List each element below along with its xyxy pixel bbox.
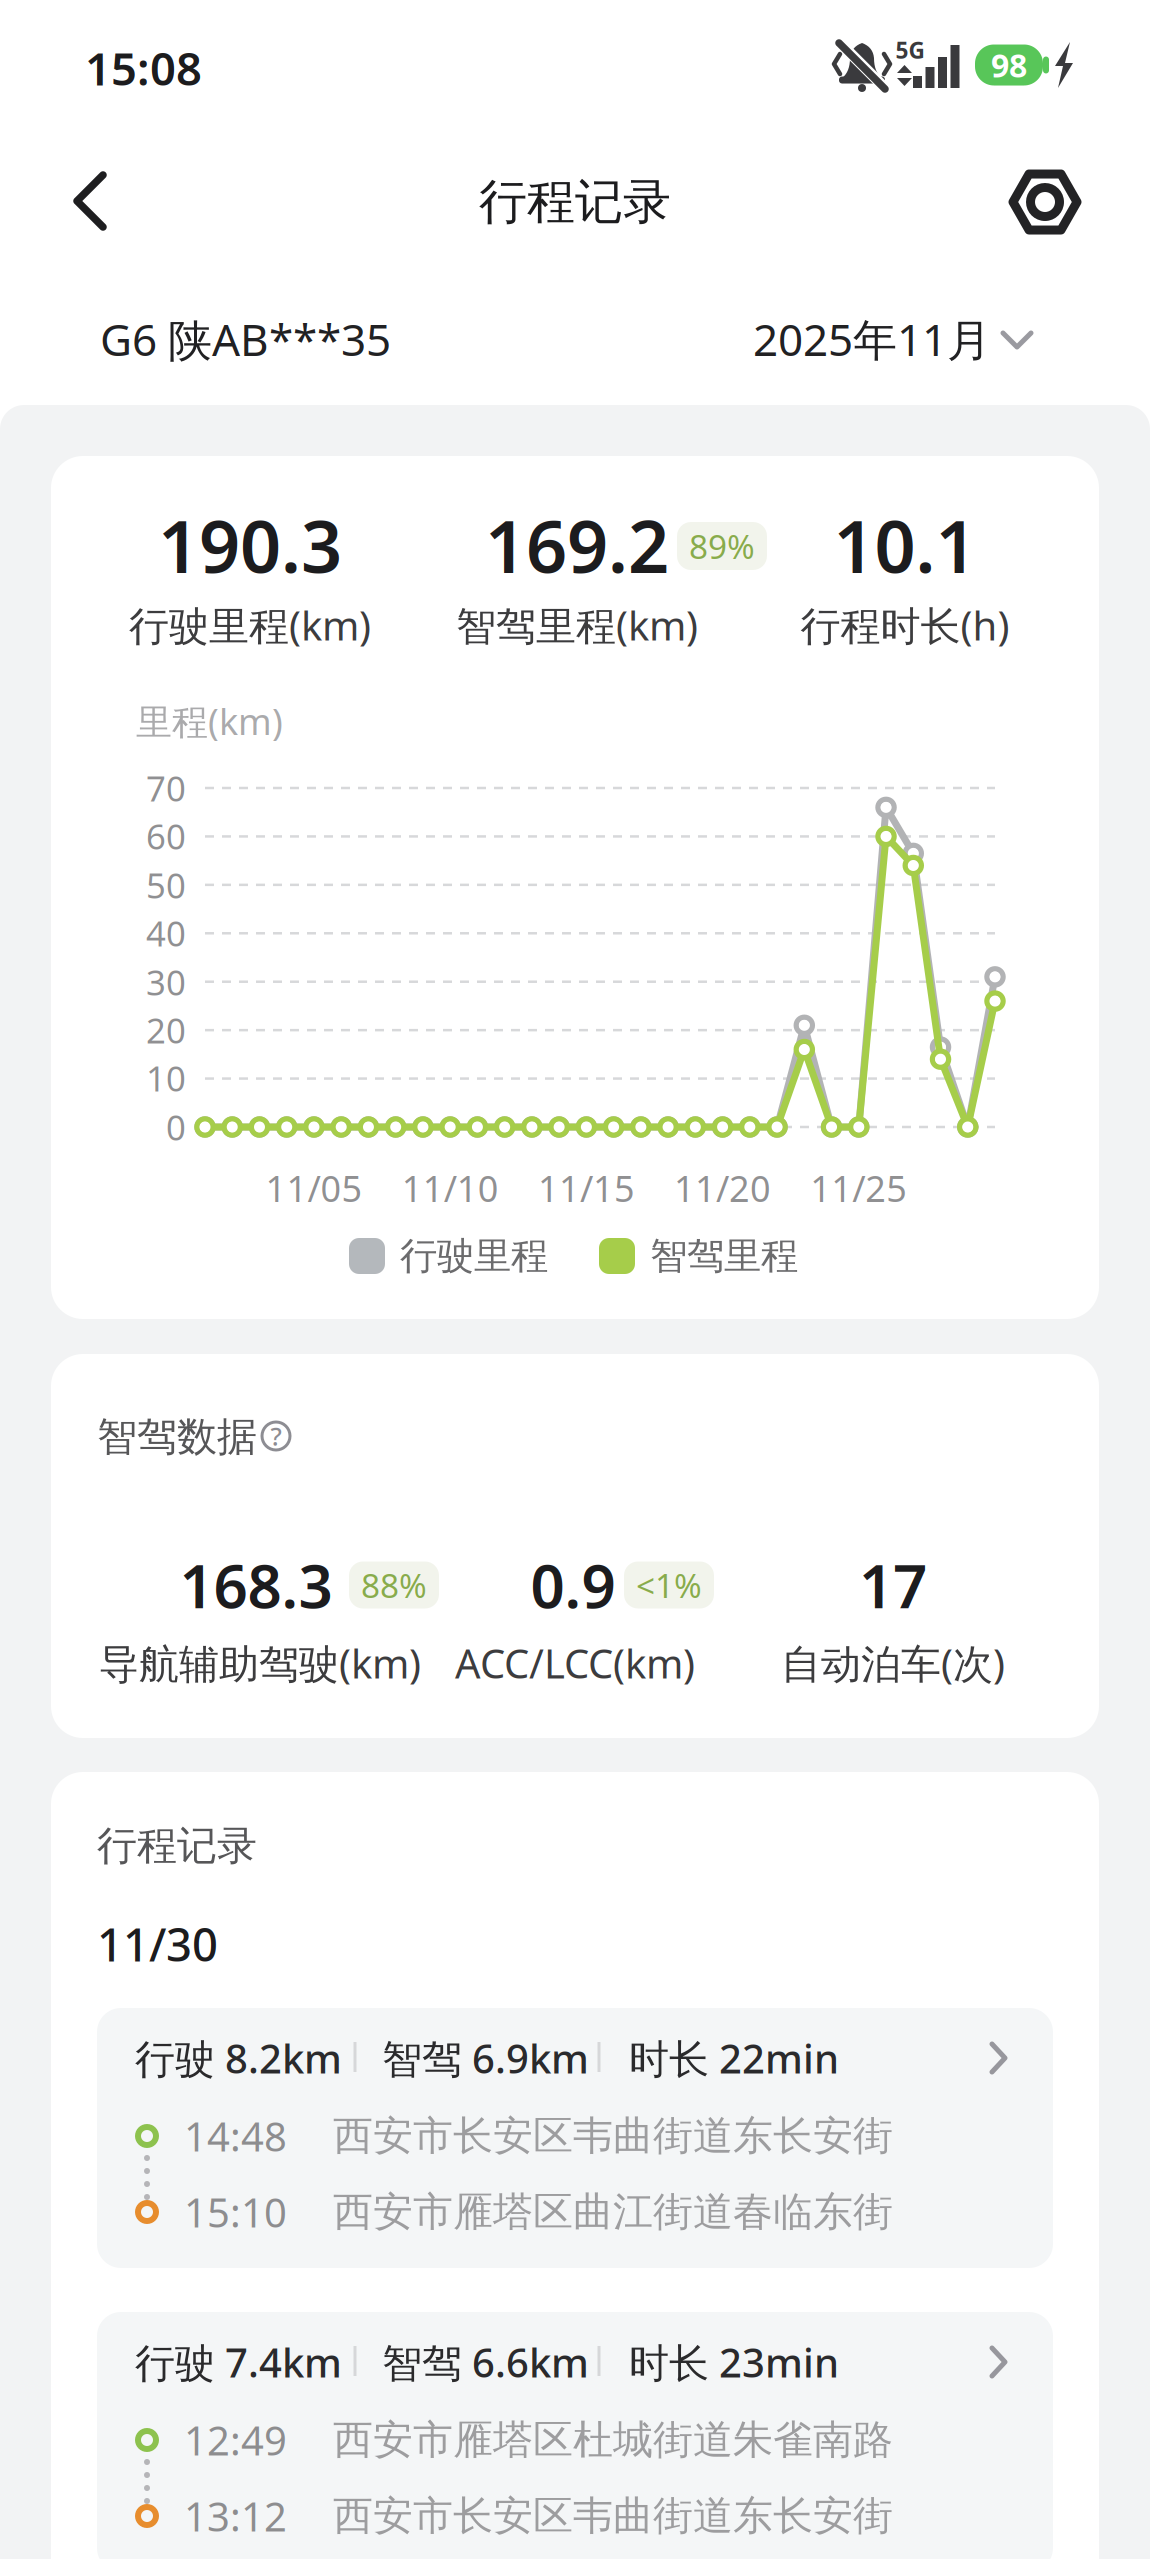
staticText: 50 bbox=[146, 862, 186, 908]
staticText: 169.2 bbox=[485, 497, 669, 593]
staticText: 5G bbox=[895, 35, 924, 65]
staticText: 10 bbox=[146, 1055, 186, 1101]
button[interactable] bbox=[65, 166, 135, 236]
staticText: 导航辅助驾驶(km) bbox=[99, 1636, 421, 1689]
staticText: 11/10 bbox=[402, 1164, 499, 1212]
staticText: 11/15 bbox=[538, 1164, 635, 1212]
staticText: 西安市长安区韦曲街道东长安街 bbox=[333, 2491, 893, 2540]
staticText: 智驾 6.9km bbox=[382, 2031, 589, 2084]
staticText: 11/25 bbox=[810, 1164, 907, 1212]
button[interactable]: 行驶 8.2km bbox=[97, 2008, 1053, 2268]
staticText: 0 bbox=[166, 1104, 186, 1150]
button[interactable]: ? bbox=[259, 1419, 293, 1453]
staticText: 14:48 bbox=[184, 2109, 287, 2162]
staticText: 98 bbox=[991, 44, 1027, 86]
staticText: 行程记录 bbox=[97, 1821, 257, 1870]
staticText: 时长 22min bbox=[629, 2031, 839, 2084]
button[interactable]: 2025年11月 bbox=[571, 303, 1041, 375]
staticText: 行程记录 bbox=[479, 172, 671, 231]
staticText: 智驾 6.6km bbox=[382, 2335, 589, 2388]
staticText: 60 bbox=[146, 813, 186, 859]
staticText: 13:12 bbox=[184, 2489, 287, 2542]
staticText: 168.3 bbox=[179, 1545, 332, 1625]
staticText: 自动泊车(次) bbox=[781, 1636, 1005, 1689]
staticText: 70 bbox=[146, 765, 186, 811]
staticText: 2025年11月 bbox=[753, 310, 991, 368]
staticText: 西安市长安区韦曲街道东长安街 bbox=[333, 2111, 893, 2160]
staticText: 行驶 7.4km bbox=[135, 2335, 342, 2388]
staticText: 西安市雁塔区曲江街道春临东街 bbox=[333, 2187, 893, 2236]
staticText: 30 bbox=[146, 959, 186, 1005]
staticText: 智驾里程(km) bbox=[456, 598, 698, 651]
staticText: 17 bbox=[859, 1545, 927, 1625]
staticText: 行驶里程(km) bbox=[129, 598, 371, 651]
staticText: 12:49 bbox=[184, 2413, 287, 2466]
staticText: 15:10 bbox=[184, 2185, 287, 2238]
staticText: 行驶 8.2km bbox=[135, 2031, 342, 2084]
staticText: 智驾里程 bbox=[650, 1233, 798, 1279]
staticText: 10.1 bbox=[833, 497, 976, 593]
staticText: 行程时长(h) bbox=[800, 598, 1009, 651]
staticText: 15:08 bbox=[85, 38, 202, 98]
staticText: ACC/LCC(km) bbox=[455, 1636, 695, 1689]
button[interactable] bbox=[1005, 162, 1085, 242]
staticText: 88% bbox=[361, 1563, 427, 1607]
staticText: 行驶里程 bbox=[400, 1233, 548, 1279]
staticText: 西安市雁塔区杜城街道朱雀南路 bbox=[333, 2415, 893, 2464]
staticText: 20 bbox=[146, 1007, 186, 1053]
staticText: 89% bbox=[689, 524, 755, 568]
staticText: 190.3 bbox=[158, 497, 342, 593]
staticText: 40 bbox=[146, 910, 186, 956]
staticText: 11/05 bbox=[265, 1164, 362, 1212]
staticText: 11/30 bbox=[97, 1914, 218, 1974]
staticText: 里程(km) bbox=[136, 697, 283, 745]
staticText: 时长 23min bbox=[629, 2335, 839, 2388]
staticText: <1% bbox=[636, 1563, 702, 1607]
staticText: ? bbox=[270, 1419, 281, 1453]
staticText: 0.9 bbox=[530, 1545, 615, 1625]
button[interactable]: 行驶 7.4km bbox=[97, 2312, 1053, 2559]
staticText: 11/20 bbox=[674, 1164, 771, 1212]
staticText: 智驾数据 bbox=[97, 1412, 257, 1461]
staticText: G6 陕AB***35 bbox=[100, 310, 391, 368]
